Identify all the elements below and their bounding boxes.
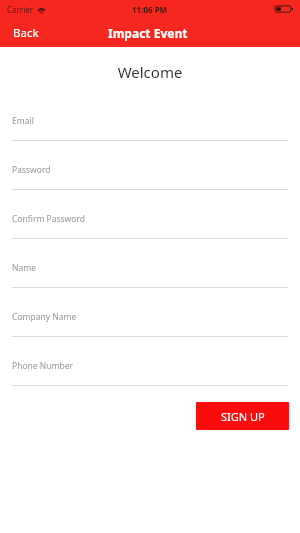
- button[interactable]: Confirm Password: [12, 213, 288, 239]
- staticText: Impact Event: [108, 25, 188, 41]
- staticText: Back: [13, 25, 39, 41]
- staticText: Confirm Password: [12, 213, 85, 225]
- staticText: Company Name: [12, 311, 77, 323]
- staticText: Carrier: [7, 4, 34, 15]
- staticText: Welcome: [0, 62, 300, 82]
- button[interactable]: Company Name: [12, 311, 288, 337]
- staticText: Phone Number: [12, 360, 73, 372]
- staticText: Password: [12, 164, 51, 176]
- button[interactable]: Name: [12, 262, 288, 288]
- staticText: Name: [12, 262, 36, 274]
- button[interactable]: SIGN UP: [196, 402, 289, 430]
- button[interactable]: Email: [12, 115, 288, 141]
- button[interactable]: Back: [6, 21, 46, 45]
- staticText: 11:06 PM: [132, 4, 168, 15]
- button[interactable]: Password: [12, 164, 288, 190]
- staticText: SIGN UP: [221, 409, 265, 424]
- button[interactable]: Phone Number: [12, 360, 288, 386]
- staticText: Email: [12, 115, 34, 127]
